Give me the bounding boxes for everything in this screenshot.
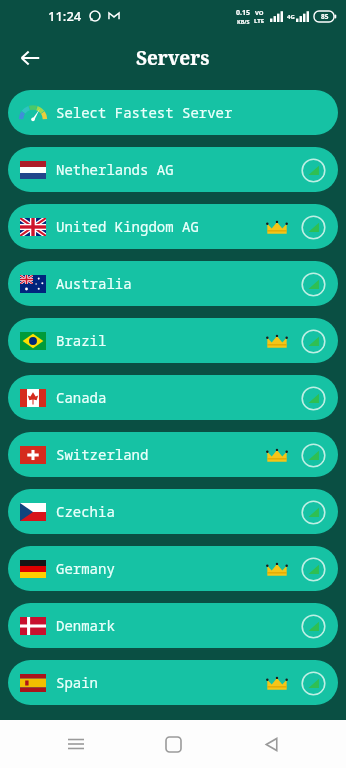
- staticText: Canada: [56, 388, 107, 407]
- button[interactable]: Select Australia: [300, 271, 326, 297]
- button[interactable]: Denmark: [8, 603, 338, 648]
- button[interactable]: Select Canada: [300, 385, 326, 411]
- staticText: 0.15: [236, 8, 250, 18]
- button[interactable]: Australia: [8, 261, 338, 306]
- button[interactable]: Netherlands AG: [8, 147, 338, 192]
- staticText: Australia: [56, 274, 132, 293]
- staticText: United Kingdom AG: [56, 217, 199, 236]
- staticText: Switzerland: [56, 445, 149, 464]
- staticText: LTE: [254, 17, 265, 25]
- button[interactable]: Select Czechia: [300, 499, 326, 525]
- button[interactable]: Recent apps: [54, 722, 98, 766]
- staticText: Select Fastest Server: [56, 103, 233, 122]
- button[interactable]: Back: [10, 38, 50, 78]
- staticText: Czechia: [56, 502, 115, 521]
- button[interactable]: Select Germany: [300, 556, 326, 582]
- staticText: Spain: [56, 673, 98, 692]
- staticText: Denmark: [56, 616, 115, 635]
- button[interactable]: Back: [249, 722, 293, 766]
- button[interactable]: Select Switzerland: [300, 442, 326, 468]
- button[interactable]: Canada: [8, 375, 338, 420]
- button[interactable]: Germany: [8, 546, 338, 591]
- staticText: 4G: [287, 13, 295, 21]
- staticText: 11:24: [48, 7, 82, 25]
- button[interactable]: Select Denmark: [300, 613, 326, 639]
- staticText: Brazil: [56, 331, 107, 350]
- button[interactable]: Switzerland: [8, 432, 338, 477]
- button[interactable]: United Kingdom AG: [8, 204, 338, 249]
- button[interactable]: Spain: [8, 660, 338, 705]
- button[interactable]: Select United Kingdom AG: [300, 214, 326, 240]
- button[interactable]: Select Netherlands AG: [300, 157, 326, 183]
- staticText: Netherlands AG: [56, 160, 174, 179]
- staticText: Servers: [136, 45, 210, 71]
- button[interactable]: Select Fastest Server: [8, 90, 338, 135]
- button[interactable]: Brazil: [8, 318, 338, 363]
- staticText: Germany: [56, 559, 115, 578]
- button[interactable]: Select Spain: [300, 670, 326, 696]
- button[interactable]: Home: [151, 722, 195, 766]
- staticText: 85: [321, 12, 329, 21]
- staticText: VO: [255, 9, 264, 17]
- button[interactable]: Czechia: [8, 489, 338, 534]
- staticText: KB/S: [237, 18, 250, 25]
- button[interactable]: Select Brazil: [300, 328, 326, 354]
